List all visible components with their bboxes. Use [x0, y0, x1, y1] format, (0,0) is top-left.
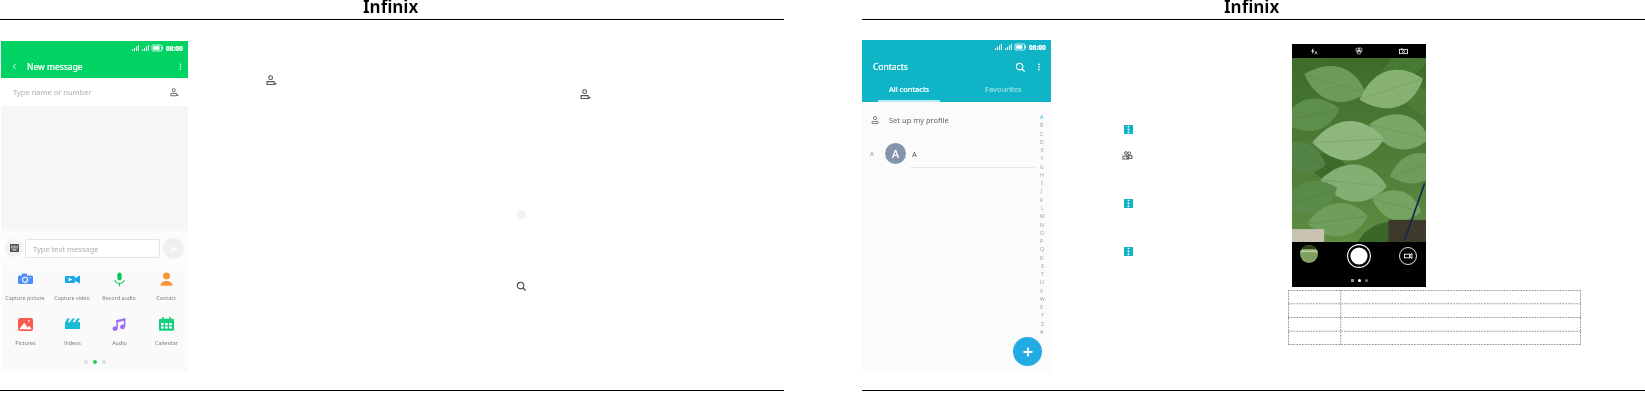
staticText: Audio [112, 339, 127, 346]
button[interactable]: Gallery [1300, 245, 1318, 263]
staticText: Calendar [155, 339, 178, 346]
staticText: 08:00 [166, 44, 183, 53]
button[interactable]: Add contact [1013, 337, 1042, 366]
button[interactable]: Capture picture [2, 272, 48, 301]
staticText: G [1040, 163, 1044, 170]
button[interactable]: More options [1124, 125, 1133, 134]
staticText: Favourites [985, 84, 1022, 94]
staticText: # [1040, 328, 1044, 335]
button[interactable]: Pictures [2, 317, 48, 346]
button[interactable]: Video mode [1399, 247, 1417, 265]
staticText: S [1041, 262, 1044, 269]
button[interactable]: Groups [1122, 150, 1133, 161]
staticText: X [1040, 303, 1044, 310]
staticText: Z [1041, 320, 1044, 327]
staticText: R [1040, 254, 1044, 261]
staticText: Capture video [54, 294, 90, 301]
staticText: Infinix [363, 0, 419, 18]
button[interactable]: Set up my profile [871, 108, 1051, 132]
button[interactable]: Videos [49, 317, 95, 346]
staticText: F [1041, 154, 1044, 161]
staticText: B [1040, 121, 1044, 128]
button[interactable]: Audio [96, 317, 142, 346]
staticText: Contacts [873, 61, 908, 73]
staticText: V [1040, 287, 1044, 294]
staticText: A [870, 150, 874, 158]
button[interactable]: Record audio [96, 272, 142, 301]
staticText: Q [1040, 245, 1045, 252]
button[interactable]: Switch camera [1381, 44, 1426, 58]
staticText: O [1040, 229, 1045, 236]
button[interactable]: Contact [143, 272, 189, 301]
staticText: New message [27, 61, 83, 73]
staticText: Pictures [15, 339, 36, 346]
staticText: A [1040, 113, 1044, 120]
button[interactable]: Calendar [143, 317, 189, 346]
staticText: A [912, 149, 917, 159]
staticText: C [1040, 130, 1044, 137]
staticText: Set up my profile [889, 115, 949, 125]
staticText: A [892, 146, 900, 161]
button[interactable]: Search [516, 281, 527, 292]
staticText: All contacts [889, 84, 930, 94]
staticText: L [1041, 204, 1044, 211]
button[interactable]: Type text message [25, 239, 160, 258]
staticText: Infinix [1224, 0, 1280, 18]
staticText: W [1040, 295, 1045, 302]
staticText: 08:00 [1029, 43, 1046, 52]
button[interactable]: A [862, 140, 1051, 167]
other: Add recipient [168, 86, 180, 98]
button[interactable]: Shutter [1347, 244, 1371, 268]
button[interactable]: Keyboard [5, 239, 23, 257]
button[interactable]: Add contact [266, 75, 277, 86]
button[interactable]: Capture video [49, 272, 95, 301]
staticText: T [1041, 270, 1044, 277]
staticText: J [1041, 187, 1043, 194]
staticText: M [1040, 212, 1045, 219]
button[interactable]: Add contact [580, 89, 591, 100]
button[interactable]: Type name or number [13, 78, 180, 106]
staticText: H [1040, 171, 1044, 178]
button[interactable]: Filters [1336, 44, 1381, 58]
button[interactable]: All contacts [862, 79, 956, 102]
staticText: Type name or number [13, 87, 92, 97]
staticText: Contact [156, 294, 176, 301]
button[interactable]: Search [1012, 59, 1028, 75]
button[interactable]: Back [1, 55, 27, 78]
staticText: Y [1041, 311, 1044, 318]
staticText: Videos [64, 339, 81, 346]
staticText: N [1040, 221, 1044, 228]
button[interactable]: More options [1033, 61, 1045, 73]
staticText: U [1040, 278, 1044, 285]
button[interactable]: Flash [1292, 44, 1336, 58]
button[interactable]: Send [163, 238, 184, 259]
staticText: I [1041, 179, 1043, 186]
staticText: Type text message [33, 244, 99, 254]
staticText: E [1041, 146, 1044, 153]
staticText: D [1040, 138, 1044, 145]
staticText: Record audio [102, 294, 136, 301]
button[interactable]: More options [1124, 199, 1133, 208]
staticText: P [1040, 237, 1044, 244]
button[interactable]: More options [172, 55, 188, 78]
staticText: Capture picture [5, 294, 45, 301]
button[interactable]: Favourites [956, 79, 1051, 102]
button[interactable]: More options [1124, 247, 1133, 256]
staticText: K [1040, 196, 1044, 203]
